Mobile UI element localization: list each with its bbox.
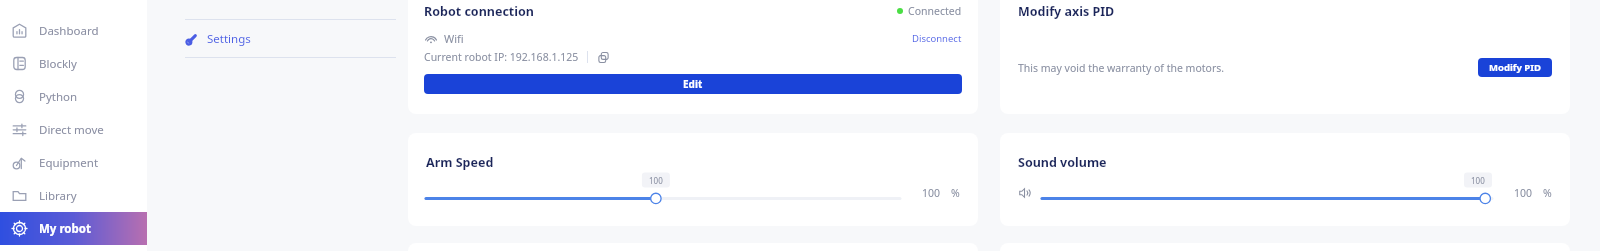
button[interactable]: Equipment [0,146,147,179]
staticText: Modify PID [1489,61,1541,74]
staticText: Equipment [39,155,99,171]
staticText: Modify axis PID [1018,3,1115,20]
staticText: Connected [908,4,962,18]
staticText: % [1543,186,1552,200]
staticText: Blockly [39,56,77,72]
staticText: Python [39,89,78,105]
staticText: Wifi [444,31,464,46]
button[interactable]: Settings [185,20,396,57]
staticText: 100 [649,175,663,186]
staticText: Direct move [39,122,104,138]
staticText: Settings [207,31,251,47]
button[interactable]: Edit [424,74,962,94]
button[interactable]: Python [0,80,147,113]
staticText: This may void the warranty of the motors… [1018,61,1225,75]
staticText: Current robot IP: 192.168.1.125 [424,50,579,64]
staticText: 100 [921,186,940,200]
staticText: Dashboard [39,23,99,39]
button[interactable]: Library [0,179,147,212]
staticText: Library [39,188,77,204]
button[interactable]: Disconnect [912,32,962,45]
button[interactable]: Direct move [0,113,147,146]
staticText: Arm Speed [426,154,494,171]
button[interactable]: My robot [0,212,147,245]
staticText: My robot [39,221,91,237]
staticText: Edit [683,77,703,91]
button[interactable]: Copy IP address [596,50,610,64]
button[interactable]: Dashboard [0,14,147,47]
staticText: Disconnect [912,32,962,45]
staticText: Robot connection [424,3,534,20]
button[interactable]: Modify PID [1478,58,1552,77]
staticText: % [951,186,960,200]
button[interactable]: Blockly [0,47,147,80]
staticText: Sound volume [1018,154,1107,171]
staticText: 100 [1513,186,1532,200]
staticText: 100 [1471,175,1485,186]
